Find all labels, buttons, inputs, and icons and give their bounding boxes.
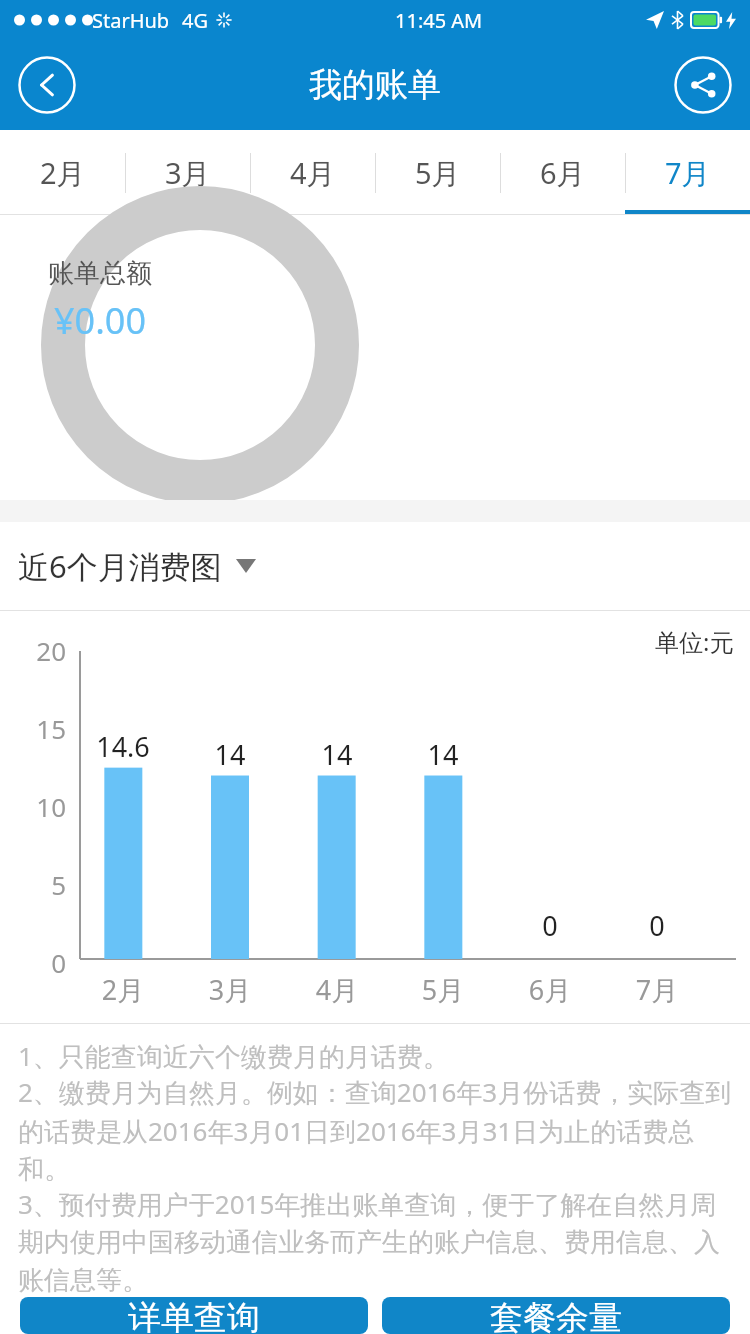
- staticText: 详单查询: [128, 1297, 260, 1334]
- staticText: 近6个月消费图: [18, 545, 222, 587]
- staticText: 5: [0, 867, 66, 902]
- staticText: 0: [0, 945, 66, 980]
- button[interactable]: Back: [18, 56, 76, 114]
- staticText: 2月: [40, 153, 86, 193]
- staticText: 10: [0, 789, 66, 824]
- button[interactable]: 近6个月消费图: [18, 545, 256, 587]
- staticText: 单位:元: [655, 625, 734, 658]
- staticText: 我的账单: [309, 64, 441, 106]
- staticText: 0: [617, 907, 697, 944]
- staticText: 14: [297, 736, 377, 773]
- staticText: StarHub: [92, 7, 170, 34]
- staticText: 1、只能查询近六个缴费月的月话费。: [18, 1038, 449, 1074]
- staticText: 11:45 AM: [395, 7, 483, 34]
- staticText: 3、预付费用户于2015年推出账单查询，便于了解在自然月周期内使用中国移动通信业…: [18, 1186, 732, 1297]
- button[interactable]: 5月: [375, 130, 500, 215]
- staticText: 7月: [617, 971, 697, 1008]
- staticText: 5月: [403, 971, 483, 1008]
- staticText: 账单总额: [48, 257, 152, 290]
- staticText: 0: [510, 907, 590, 944]
- staticText: 15: [0, 711, 66, 746]
- staticText: 14: [190, 736, 270, 773]
- staticText: 2、缴费月为自然月。例如：查询2016年3月份话费，实际查到的话费是从2016年…: [18, 1074, 732, 1186]
- staticText: 6月: [510, 971, 590, 1008]
- button[interactable]: 套餐余量: [382, 1297, 730, 1334]
- staticText: 14: [403, 736, 483, 773]
- staticText: 5月: [415, 153, 461, 193]
- staticText: ¥0.00: [54, 296, 147, 345]
- button[interactable]: Share: [674, 56, 732, 114]
- staticText: 4月: [297, 971, 377, 1008]
- staticText: 4月: [290, 153, 336, 193]
- button[interactable]: 3月: [125, 130, 250, 215]
- staticText: 3月: [165, 153, 211, 193]
- staticText: 4G: [182, 7, 208, 34]
- button[interactable]: 6月: [500, 130, 625, 215]
- button[interactable]: 7月: [625, 130, 750, 215]
- staticText: 7月: [665, 153, 711, 193]
- button[interactable]: 4月: [250, 130, 375, 215]
- staticText: 套餐余量: [490, 1297, 622, 1334]
- staticText: 20: [0, 633, 66, 668]
- staticText: 6月: [540, 153, 586, 193]
- button[interactable]: 详单查询: [20, 1297, 368, 1334]
- staticText: 3月: [190, 971, 270, 1008]
- button[interactable]: 2月: [0, 130, 125, 215]
- staticText: 2月: [83, 971, 163, 1008]
- staticText: 14.6: [83, 728, 163, 765]
